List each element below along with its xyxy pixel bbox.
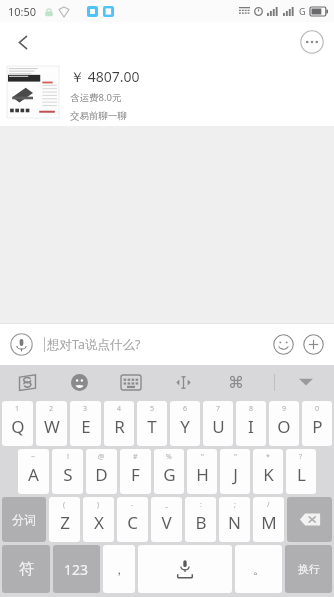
button[interactable]: ~ [18,449,49,494]
button[interactable]: 符 [2,545,50,593]
button[interactable]: 8 [236,401,266,446]
button[interactable]: Emoji [64,367,94,397]
button[interactable]: " [220,449,250,494]
staticText: I [248,415,254,438]
staticText: 123 [64,560,89,579]
button[interactable]: Back [6,25,40,59]
button[interactable]: 2 [36,401,67,446]
staticText: ) [97,500,100,510]
button[interactable]: More options [298,28,326,56]
staticText: ; [234,500,236,510]
staticText: G [299,5,306,17]
staticText: M [261,511,277,534]
button[interactable]: 想对Ta说点什么? [44,336,270,353]
staticText: D [95,463,108,486]
button[interactable]: " [187,449,217,494]
staticText: E [81,415,91,438]
staticText: 。 [253,562,265,577]
staticText: P [312,415,323,438]
button[interactable]: 9 [269,401,299,446]
button[interactable]: * [253,449,283,494]
staticText: Z [60,511,70,534]
staticText: T [147,415,157,438]
button[interactable]: Move cursor [168,367,198,397]
button[interactable]: : [185,497,216,542]
button[interactable]: Space, voice input [138,545,232,593]
button[interactable]: Keyboard layout [116,367,146,397]
staticText: S [63,463,73,486]
staticText: 3 [83,404,88,414]
staticText: O [277,415,291,438]
staticText: C [127,511,138,534]
button[interactable]: # [120,449,151,494]
staticText: 符 [19,560,34,579]
staticText: @ [98,452,105,462]
button[interactable]: 123 [53,545,100,593]
staticText: : [200,500,202,510]
staticText: / [267,500,270,510]
staticText: H [196,463,209,486]
staticText: - [131,500,134,510]
staticText: X [94,511,104,534]
button[interactable]: Voice input [8,331,34,357]
button[interactable]: ， [103,545,135,593]
staticText: A [28,463,39,486]
staticText: 5 [150,404,155,414]
staticText: U [212,415,225,438]
button[interactable]: ; [219,497,250,542]
button[interactable]: ! [52,449,83,494]
button[interactable]: 分词 [2,497,46,542]
button[interactable]: - [117,497,148,542]
button[interactable]: 3 [70,401,101,446]
button[interactable]: _ [151,497,182,542]
button[interactable]: % [154,449,184,494]
staticText: 2 [49,404,54,414]
staticText: " [234,452,237,462]
staticText: 1 [15,404,20,414]
button[interactable]: ￥ 4807.00 [0,62,334,124]
staticText: N [228,511,241,534]
staticText: " [201,452,204,462]
button[interactable]: / [253,497,284,542]
staticText: ￥ 4807.00 [70,67,140,86]
button[interactable]: 1 [2,401,33,446]
staticText: ? [299,452,303,462]
staticText: V [161,511,172,534]
button[interactable]: 0 [302,401,332,446]
button[interactable]: Shortcuts [221,367,251,397]
staticText: J [233,463,238,486]
staticText: ( [63,500,66,510]
button[interactable]: ) [83,497,114,542]
staticText: R [114,415,125,438]
staticText: 8 [249,404,254,414]
staticText: 7 [216,404,221,414]
staticText: F [131,463,140,486]
button[interactable]: 。 [235,545,282,593]
staticText: ! [67,452,69,462]
button[interactable]: Backspace [287,497,332,542]
button[interactable]: 换行 [285,545,332,593]
button[interactable]: Hide keyboard [291,367,321,397]
button[interactable]: 5 [137,401,167,446]
button[interactable]: 6 [170,401,200,446]
staticText: ~ [31,452,36,462]
staticText: * [266,452,270,462]
button[interactable]: Sogou input [12,367,42,397]
staticText: W [44,415,60,438]
staticText: Y [180,415,190,438]
staticText: L [297,463,306,486]
button[interactable]: @ [86,449,117,494]
staticText: G [163,463,176,486]
staticText: B [195,511,207,534]
staticText: K [263,463,274,486]
staticText: 9 [282,404,287,414]
staticText: 想对Ta说点什么? [47,336,141,353]
button[interactable]: ? [286,449,316,494]
button[interactable]: ( [49,497,80,542]
button[interactable]: 7 [203,401,233,446]
button[interactable]: 4 [104,401,134,446]
staticText: % [166,452,172,462]
button[interactable]: Emoji [270,331,296,357]
button[interactable]: Add attachment [300,331,326,357]
staticText: 4 [117,404,122,414]
